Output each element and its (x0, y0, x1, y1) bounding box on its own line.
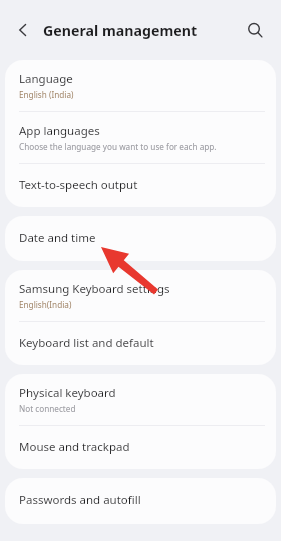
staticText: Date and time (19, 230, 96, 246)
button[interactable]: Date and time (5, 216, 276, 261)
button[interactable]: Search (238, 13, 272, 47)
button[interactable]: Mouse and trackpad (5, 426, 276, 469)
button[interactable]: App languages (5, 112, 276, 163)
staticText: Language (19, 71, 73, 87)
staticText: Physical keyboard (19, 385, 116, 401)
staticText: Samsung Keyboard settings (19, 281, 170, 297)
staticText: General management (43, 21, 198, 40)
staticText: English (India) (19, 89, 74, 100)
staticText: Mouse and trackpad (19, 439, 130, 455)
staticText: Keyboard list and default (19, 335, 154, 351)
staticText: Passwords and autofill (19, 492, 141, 508)
button[interactable]: Back (10, 17, 36, 43)
staticText: Choose the language you want to use for … (19, 141, 217, 152)
button[interactable]: Passwords and autofill (5, 478, 276, 524)
staticText: English(India) (19, 299, 72, 310)
button[interactable]: Keyboard list and default (5, 322, 276, 365)
button[interactable]: Text-to-speech output (5, 164, 276, 207)
button[interactable]: Samsung Keyboard settings (5, 270, 276, 321)
button[interactable]: Language (5, 60, 276, 111)
staticText: Not connected (19, 403, 76, 414)
staticText: Text-to-speech output (19, 177, 138, 193)
button[interactable]: Physical keyboard (5, 374, 276, 425)
staticText: App languages (19, 123, 100, 139)
